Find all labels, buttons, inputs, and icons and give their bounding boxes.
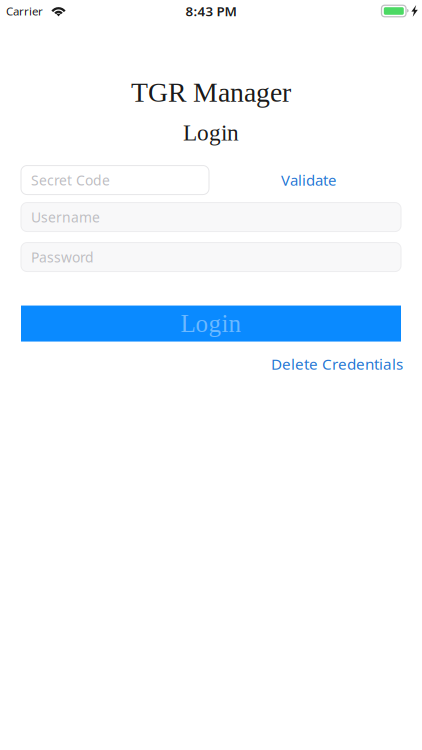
- staticText: 8:43 PM: [185, 2, 236, 20]
- staticText: Login: [180, 310, 241, 337]
- button[interactable]: Validate: [281, 170, 336, 190]
- staticText: TGR Manager: [131, 77, 291, 108]
- staticText: Secret Code: [31, 171, 110, 189]
- button[interactable]: Delete Credentials: [271, 354, 403, 374]
- staticText: Password: [31, 248, 94, 266]
- staticText: Validate: [281, 170, 336, 190]
- staticText: Delete Credentials: [271, 354, 403, 374]
- staticText: Carrier: [6, 3, 43, 19]
- staticText: Login: [183, 120, 239, 145]
- button[interactable]: Login: [21, 306, 401, 342]
- staticText: Username: [31, 208, 100, 226]
